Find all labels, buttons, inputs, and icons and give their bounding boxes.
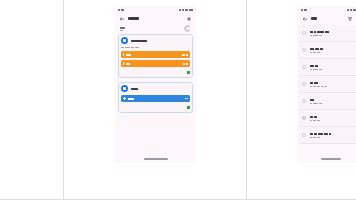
- button[interactable]: Add: [185, 15, 193, 23]
- button[interactable]: [121, 60, 190, 67]
- button[interactable]: Back: [118, 15, 126, 23]
- button[interactable]: [298, 110, 356, 127]
- button[interactable]: [298, 127, 356, 144]
- button[interactable]: [298, 25, 356, 42]
- button[interactable]: [298, 93, 356, 110]
- button[interactable]: [121, 95, 190, 102]
- button[interactable]: [298, 42, 356, 59]
- button[interactable]: [298, 59, 356, 76]
- button[interactable]: [118, 82, 193, 113]
- button[interactable]: Back: [301, 15, 309, 23]
- button[interactable]: [298, 76, 356, 93]
- button[interactable]: [121, 51, 190, 58]
- button[interactable]: Filter: [346, 15, 353, 22]
- button[interactable]: [118, 34, 193, 78]
- button[interactable]: Refresh: [184, 25, 191, 32]
